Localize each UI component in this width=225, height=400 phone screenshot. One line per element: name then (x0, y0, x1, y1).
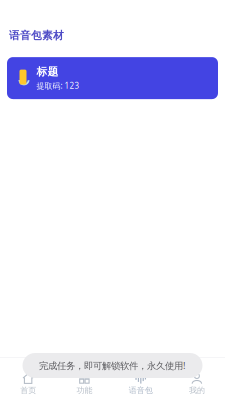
staticText: 语音包 (129, 385, 153, 395)
staticText: 提取码: 123 (36, 80, 79, 91)
button[interactable]: 功能 (56, 358, 112, 400)
staticText: 我的 (189, 385, 205, 395)
button[interactable]: 标题 (7, 57, 218, 99)
staticText: 完成任务，即可解锁软件，永久使用! (39, 359, 186, 372)
staticText: 标题 (36, 65, 58, 78)
button[interactable]: 我的 (169, 358, 225, 400)
button[interactable]: 语音包 (112, 358, 169, 400)
staticText: 首页 (20, 385, 36, 395)
button[interactable]: 首页 (0, 358, 56, 400)
staticText: 语音包素材 (9, 29, 64, 42)
staticText: 功能 (76, 385, 92, 395)
